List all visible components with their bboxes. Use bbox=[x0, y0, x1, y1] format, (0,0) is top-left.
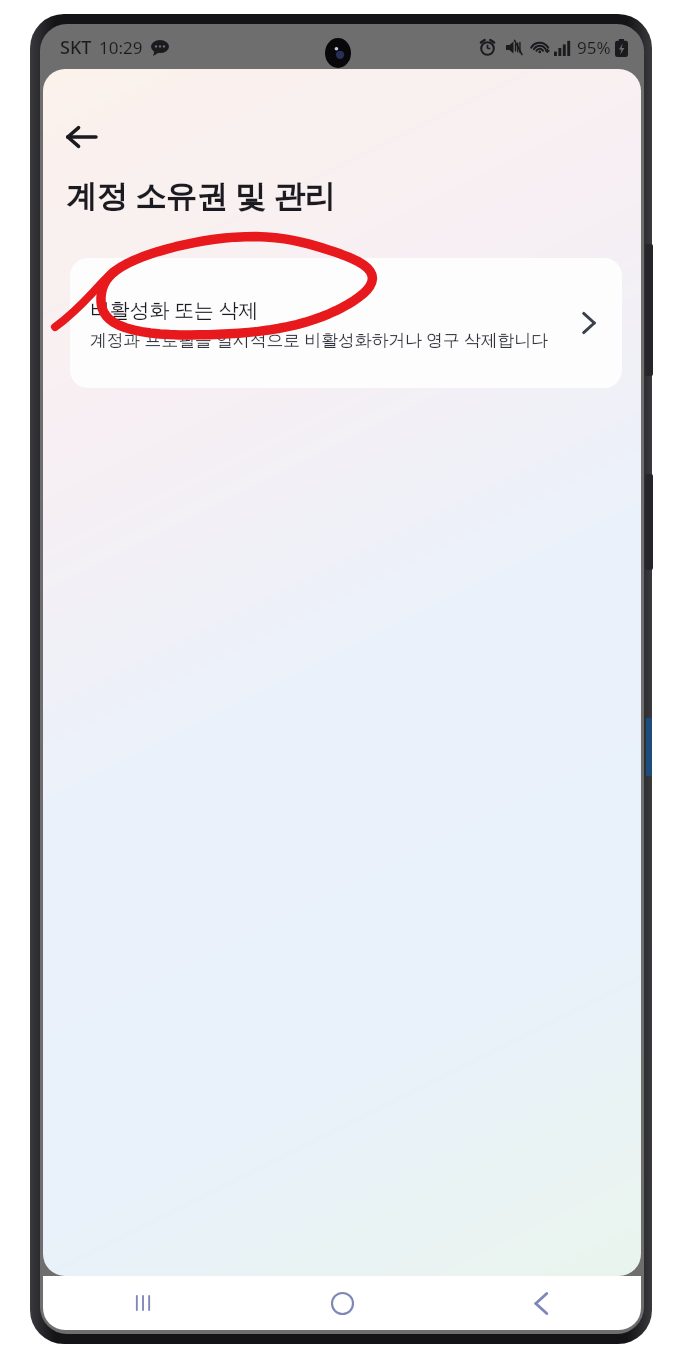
staticText: 10:29 bbox=[99, 36, 143, 59]
staticText: 비활성화 또는 삭제 bbox=[90, 296, 259, 323]
staticText: 계정 소유권 및 관리 bbox=[66, 174, 335, 216]
button[interactable]: Recent apps bbox=[43, 1276, 243, 1330]
button[interactable]: Home bbox=[243, 1276, 442, 1330]
button[interactable]: 비활성화 또는 삭제 bbox=[70, 258, 622, 388]
staticText: SKT bbox=[60, 35, 92, 60]
button[interactable]: Back bbox=[51, 107, 111, 167]
button[interactable]: Back bbox=[442, 1276, 641, 1330]
staticText: 계정과 프로필을 일시적으로 비활성화하거나 영구 삭제합니다 bbox=[90, 328, 548, 351]
staticText: 95% bbox=[577, 36, 611, 59]
